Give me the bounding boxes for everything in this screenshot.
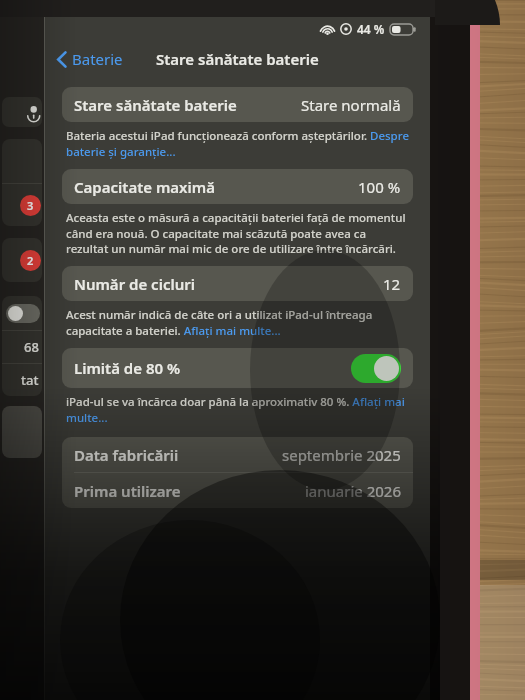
- button[interactable]: Selected item: [2, 406, 42, 458]
- button[interactable]: Limită de 80 % toggle: [351, 354, 401, 383]
- staticText: Bateria acestui iPad funcționează confor…: [66, 128, 411, 159]
- staticText: tat: [21, 371, 39, 389]
- button[interactable]: Data fabricării: [62, 437, 413, 472]
- button[interactable]: Baterie: [53, 46, 127, 72]
- staticText: 12: [383, 274, 401, 294]
- staticText: Aceasta este o măsură a capacității bate…: [66, 210, 411, 256]
- button[interactable]: Capacitate maximă: [62, 169, 413, 204]
- staticText: 68: [24, 338, 39, 356]
- button[interactable]: Toggle: [2, 296, 42, 330]
- button[interactable]: 68: [2, 331, 42, 363]
- staticText: Baterie: [72, 49, 123, 69]
- button[interactable]: Număr de cicluri: [62, 266, 413, 301]
- button[interactable]: Settings item: [2, 238, 42, 282]
- button[interactable]: Stare sănătate baterie: [62, 87, 413, 122]
- staticText: 2: [27, 253, 34, 268]
- button[interactable]: Settings item: [2, 184, 42, 226]
- staticText: Limită de 80 %: [74, 358, 181, 378]
- staticText: iPad-ul se va încărca doar până la aprox…: [66, 394, 411, 425]
- button[interactable]: Dictate search: [2, 97, 42, 127]
- staticText: Stare normală: [301, 95, 401, 115]
- staticText: Capacitate maximă: [74, 177, 215, 197]
- staticText: 100 %: [358, 177, 401, 197]
- staticText: Acest număr indică de câte ori a utiliza…: [66, 307, 411, 338]
- staticText: Prima utilizare: [74, 481, 181, 501]
- staticText: Stare sănătate baterie: [156, 49, 319, 69]
- button[interactable]: Limită de 80 %: [62, 348, 413, 388]
- staticText: 44 %: [357, 21, 385, 37]
- staticText: 3: [27, 198, 34, 213]
- staticText: Număr de cicluri: [74, 274, 195, 294]
- staticText: Stare sănătate baterie: [74, 95, 237, 115]
- button[interactable]: tat: [2, 364, 42, 396]
- staticText: ianuarie 2026: [305, 481, 401, 501]
- staticText: Data fabricării: [74, 445, 179, 465]
- button[interactable]: Prima utilizare: [62, 473, 413, 508]
- staticText: septembrie 2025: [282, 445, 401, 465]
